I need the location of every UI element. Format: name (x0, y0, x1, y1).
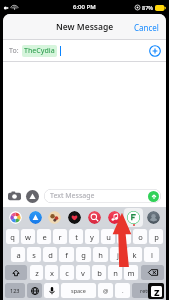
button[interactable]: Send (148, 191, 159, 202)
staticText: v (81, 268, 85, 278)
staticText: b (97, 268, 102, 278)
staticText: d (48, 250, 53, 260)
staticText: New Message (56, 21, 114, 33)
button[interactable]: l (144, 247, 159, 262)
button[interactable]: App (85, 208, 104, 227)
button[interactable]: u (101, 229, 115, 244)
button[interactable]: b (92, 265, 106, 280)
staticText: w (25, 232, 31, 242)
button[interactable]: App (65, 208, 84, 227)
button[interactable]: return (132, 283, 164, 298)
staticText: o (138, 232, 143, 242)
staticText: Cancel (134, 22, 159, 33)
button[interactable]: q (6, 229, 19, 244)
staticText: t (75, 232, 78, 242)
staticText: return (140, 287, 157, 294)
button[interactable]: t (69, 229, 83, 244)
button[interactable]: Numbers (5, 283, 25, 298)
button[interactable]: period (115, 283, 130, 298)
staticText: g (81, 250, 86, 260)
button[interactable]: App (105, 208, 124, 227)
button[interactable]: Shift (5, 265, 27, 280)
button[interactable]: Camera (8, 190, 21, 203)
button[interactable]: Backspace (141, 265, 164, 280)
staticText: y (90, 232, 94, 242)
staticText: k (132, 250, 137, 260)
button[interactable]: m (124, 265, 138, 280)
staticText: s (32, 250, 36, 260)
button[interactable]: space (61, 283, 96, 298)
button[interactable]: k (127, 247, 142, 262)
button[interactable]: c (60, 265, 74, 280)
staticText: 123 (10, 287, 20, 294)
staticText: a (16, 250, 21, 260)
button[interactable]: h (93, 247, 108, 262)
staticText: h (98, 250, 103, 260)
button[interactable]: v (76, 265, 90, 280)
staticText: To: (9, 46, 19, 56)
button[interactable]: Cancel (127, 16, 166, 39)
button[interactable]: p (149, 229, 163, 244)
button[interactable]: App (45, 208, 64, 227)
button[interactable]: App (144, 208, 163, 227)
staticText: j (117, 250, 119, 260)
staticText: f (65, 250, 68, 260)
staticText: c (65, 268, 69, 278)
staticText: n (113, 268, 118, 278)
staticText: x (50, 268, 54, 278)
button[interactable]: j (110, 247, 125, 262)
staticText: q (10, 232, 15, 242)
button[interactable]: App (26, 208, 45, 227)
button[interactable]: y (85, 229, 99, 244)
staticText: Z (154, 286, 160, 297)
staticText: TheCydia (24, 46, 55, 56)
button[interactable]: g (76, 247, 91, 262)
staticText: space (71, 287, 86, 294)
staticText: l (151, 250, 153, 260)
staticText: Text Message (50, 191, 95, 201)
button[interactable]: s (27, 247, 41, 262)
button[interactable]: App (124, 208, 143, 227)
staticText: 6:00 PM (73, 3, 96, 11)
staticText: 87% (142, 4, 153, 11)
button[interactable]: e (37, 229, 51, 244)
staticText: @ (103, 287, 109, 295)
button[interactable]: Emoji (27, 283, 42, 298)
button[interactable]: r (53, 229, 67, 244)
button[interactable]: Text Message (44, 189, 161, 203)
button[interactable]: i (117, 229, 131, 244)
button[interactable]: o (133, 229, 147, 244)
button[interactable]: d (43, 247, 57, 262)
staticText: z (35, 268, 39, 278)
button[interactable]: x (45, 265, 58, 280)
button[interactable]: App (6, 208, 25, 227)
staticText: u (106, 232, 111, 242)
button[interactable]: z (30, 265, 43, 280)
staticText: e (42, 232, 47, 242)
button[interactable]: n (108, 265, 122, 280)
staticText: p (154, 232, 159, 242)
button[interactable]: f (59, 247, 74, 262)
button[interactable]: Dictation (44, 283, 59, 298)
staticText: m (127, 268, 135, 278)
button[interactable]: App Store (26, 190, 39, 203)
button[interactable]: a (11, 247, 25, 262)
button[interactable]: w (21, 229, 35, 244)
staticText: r (58, 232, 62, 242)
button[interactable]: Add contact (149, 45, 161, 57)
button[interactable]: at (98, 283, 113, 298)
staticText: . (122, 287, 124, 295)
